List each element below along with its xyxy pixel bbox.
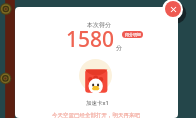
button[interactable]: 得分明细: [122, 31, 143, 38]
staticText: 得分明细: [125, 32, 141, 37]
staticText: 1580: [66, 25, 115, 54]
staticText: 今天空篮已经全部打开，明天再来吧: [52, 112, 140, 118]
button[interactable]: Close: [162, 0, 183, 20]
staticText: 本次得分: [87, 21, 111, 29]
staticText: 加速卡x1: [86, 99, 109, 107]
staticText: 分: [116, 44, 122, 52]
